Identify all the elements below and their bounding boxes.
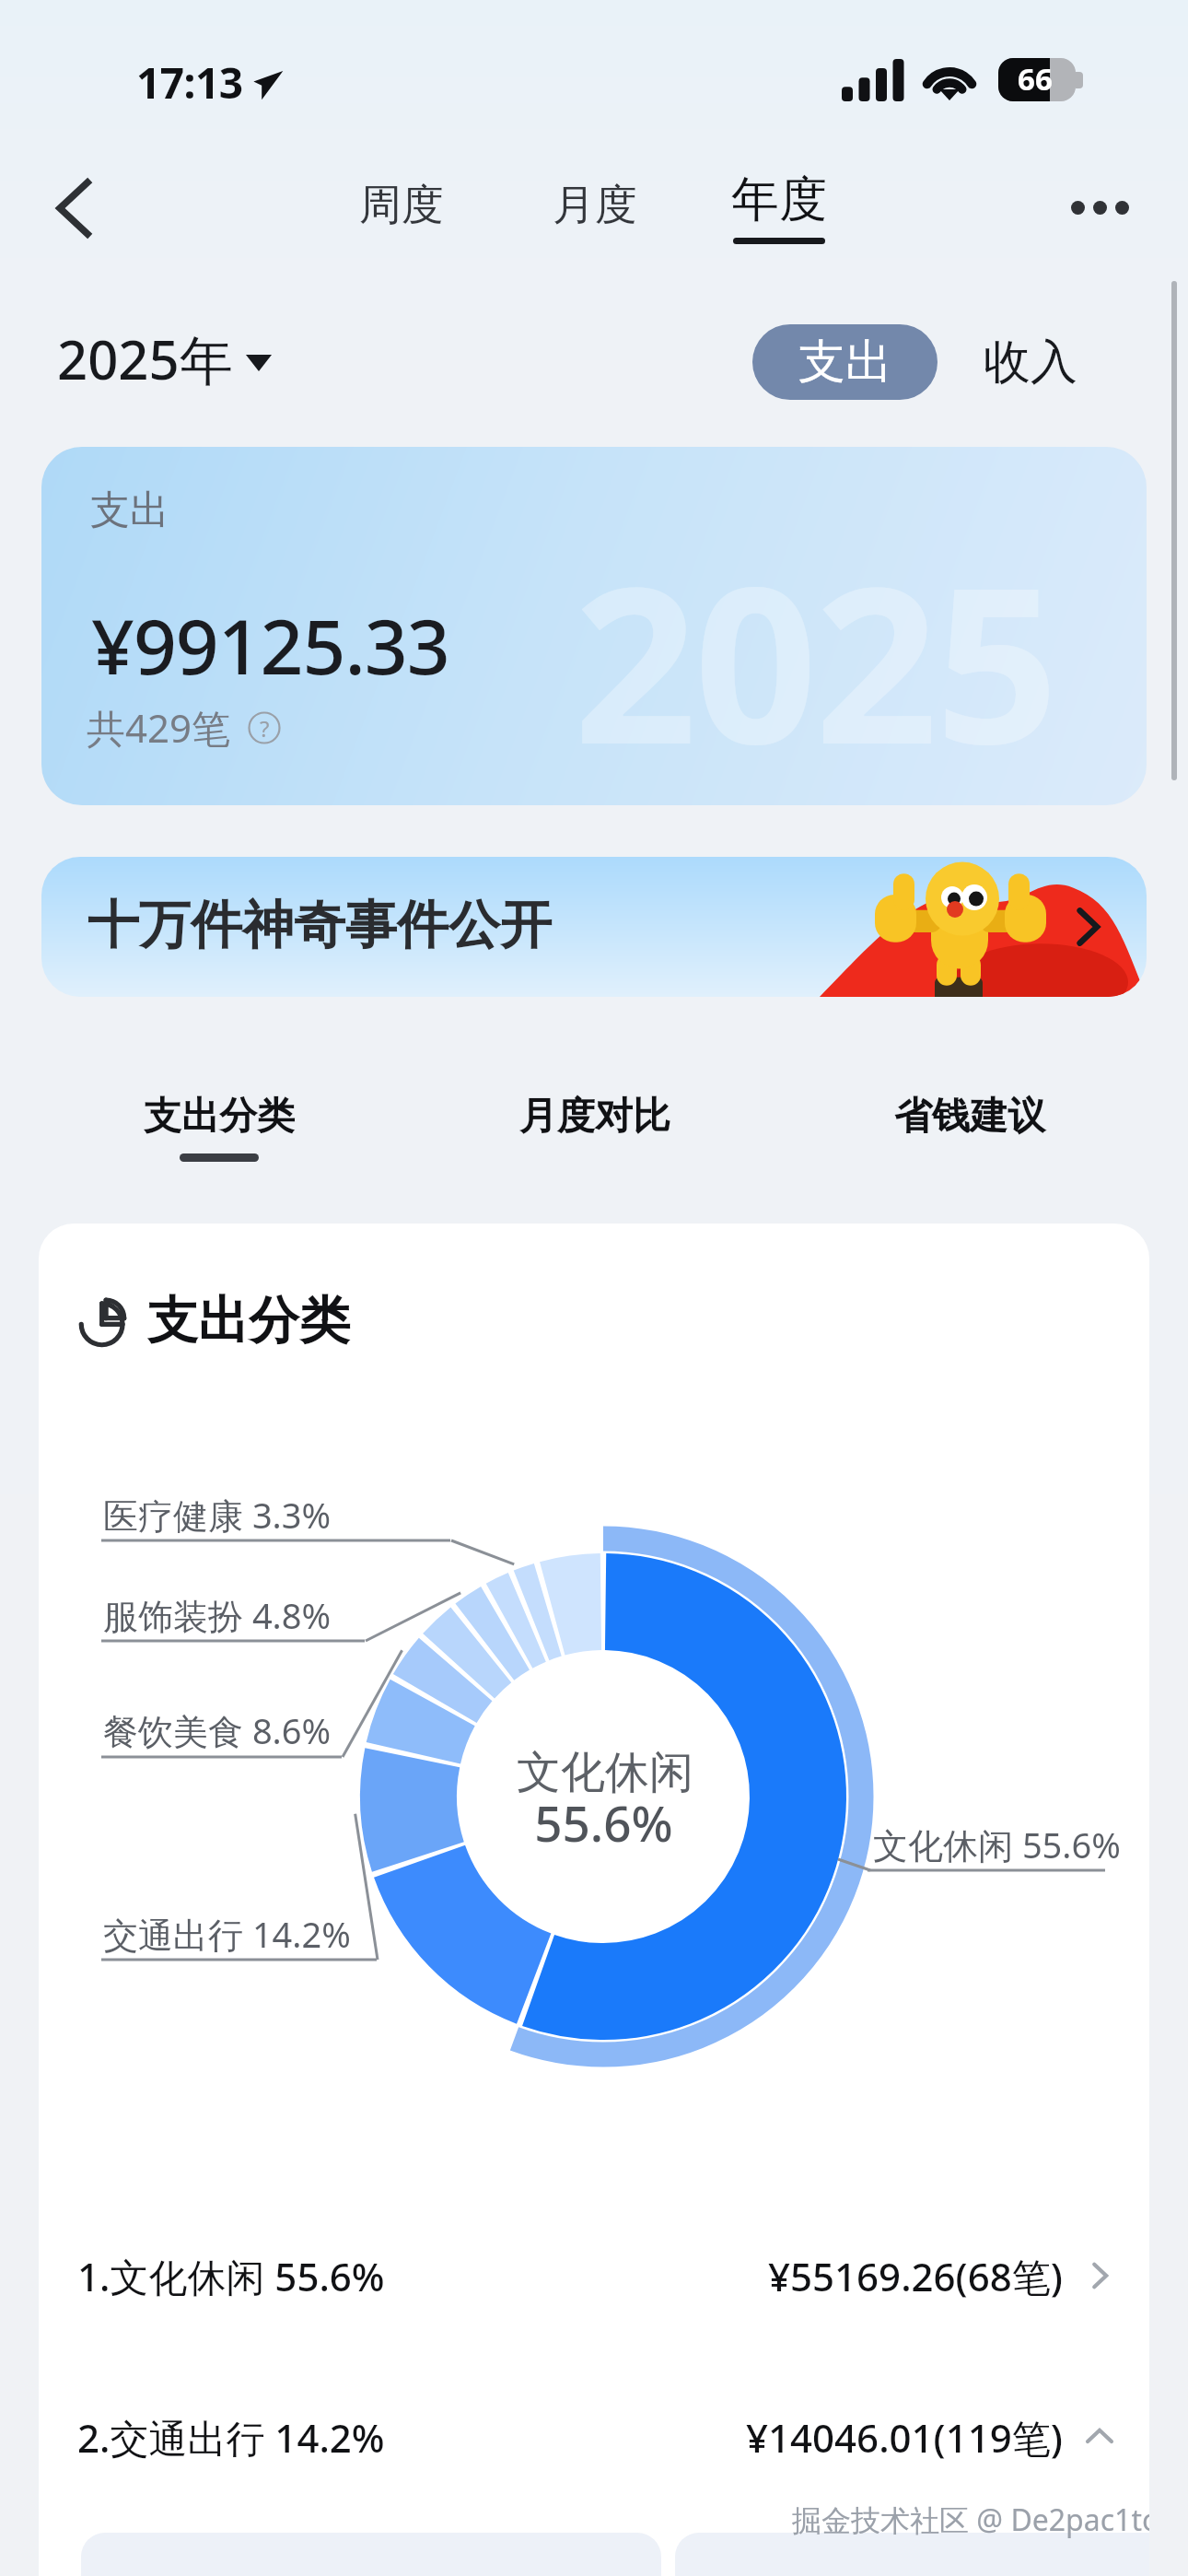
- button[interactable]: 省钱建议: [782, 1085, 1157, 1169]
- button[interactable]: 十万件神奇事件公开: [41, 857, 1147, 997]
- staticText: ¥14046.01(119笔): [746, 2411, 1063, 2464]
- staticText: 2025年: [57, 322, 233, 395]
- staticText: 文化休闲 55.6%: [873, 1821, 1121, 1868]
- button[interactable]: 收入: [963, 324, 1098, 400]
- button[interactable]: 年度: [711, 160, 847, 253]
- staticText: 支出分类: [147, 1289, 350, 1352]
- staticText: 66: [1018, 58, 1053, 100]
- staticText: 1.文化休闲 55.6%: [77, 2250, 385, 2302]
- staticText: 服饰装扮 4.8%: [103, 1591, 332, 1639]
- button[interactable]: 支出: [752, 324, 938, 400]
- staticText: 支出: [90, 486, 169, 535]
- staticText: 支出分类: [144, 1093, 295, 1141]
- button[interactable]: 月度: [532, 166, 658, 245]
- button[interactable]: 支出分类: [31, 1085, 407, 1169]
- staticText: 年度: [731, 170, 827, 230]
- staticText: 月度对比: [519, 1093, 670, 1141]
- staticText: 交通出行 14.2%: [103, 1910, 351, 1958]
- staticText: 掘金技术社区 @ De2pac1to: [792, 2500, 1149, 2540]
- staticText: 收入: [984, 333, 1077, 392]
- button[interactable]: 2.交通出行 14.2%: [39, 2372, 1149, 2501]
- button[interactable]: More options: [1035, 168, 1164, 247]
- staticText: 月度: [553, 179, 637, 232]
- button[interactable]: 1.文化休闲 55.6%: [39, 2211, 1149, 2340]
- staticText: 共429笔: [87, 701, 231, 754]
- button[interactable]: 2025: [41, 447, 1147, 805]
- staticText: 支出: [798, 333, 892, 392]
- button[interactable]: 月度对比: [407, 1085, 782, 1169]
- staticText: ¥55169.26(68笔): [768, 2250, 1063, 2302]
- staticText: 医疗健康 3.3%: [103, 1491, 332, 1539]
- staticText: 周度: [359, 179, 444, 232]
- staticText: 2.交通出行 14.2%: [77, 2411, 385, 2464]
- staticText: 2025: [574, 513, 1056, 805]
- button[interactable]: 2025年: [57, 322, 272, 395]
- staticText: 文化休闲: [517, 1745, 693, 1800]
- button[interactable]: Help: [246, 709, 283, 746]
- staticText: 55.6%: [534, 1789, 673, 1856]
- staticText: 十万件神奇事件公开: [87, 893, 552, 958]
- staticText: ?: [260, 713, 270, 744]
- button[interactable]: Back: [31, 166, 116, 251]
- staticText: ¥99125.33: [91, 593, 449, 697]
- staticText: 17:13: [136, 53, 243, 111]
- staticText: 省钱建议: [894, 1093, 1045, 1141]
- button[interactable]: 周度: [339, 166, 464, 245]
- staticText: 餐饮美食 8.6%: [103, 1706, 332, 1754]
